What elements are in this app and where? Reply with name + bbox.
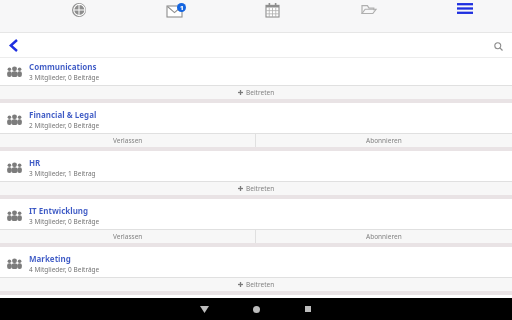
staticText: 4 Mitglieder, 0 Beiträge [29,265,100,274]
button[interactable]: Back [178,298,230,320]
button[interactable]: Menu [448,0,482,33]
button[interactable]: Home [230,298,282,320]
button[interactable]: HR [0,154,512,181]
button[interactable]: Beitreten [0,278,512,291]
button[interactable]: Abonnieren [256,134,512,147]
button[interactable]: Financial & Legal [0,106,512,133]
staticText: Financial & Legal [29,109,97,120]
button[interactable]: Abonnieren [256,230,512,243]
staticText: Marketing [29,253,71,264]
button[interactable]: Verlassen [0,230,255,243]
staticText: Verlassen [113,136,143,145]
button[interactable]: Search [487,35,509,57]
button[interactable]: Globe [62,0,96,33]
button[interactable]: Beitreten [0,182,512,195]
staticText: Abonnieren [366,136,402,145]
button[interactable]: Recents [282,298,334,320]
staticText: 3 Mitglieder, 1 Beitrag [29,169,96,178]
button[interactable]: Back [0,33,26,58]
staticText: Verlassen [113,232,143,241]
staticText: IT Entwicklung [29,205,89,216]
staticText: 1 [180,4,184,12]
staticText: 3 Mitglieder, 0 Beiträge [29,73,100,82]
staticText: 2 Mitglieder, 0 Beiträge [29,121,100,130]
button[interactable]: Files [352,0,386,33]
staticText: Communications [29,61,97,72]
staticText: HR [29,157,41,168]
button[interactable]: IT Entwicklung [0,202,512,229]
staticText: Abonnieren [366,232,402,241]
button[interactable]: Mail [159,0,193,33]
staticText: Beitreten [246,184,275,193]
staticText: Beitreten [246,280,275,289]
staticText: 3 Mitglieder, 0 Beiträge [29,217,100,226]
button[interactable]: Communications [0,58,512,85]
staticText: Beitreten [246,88,275,97]
button[interactable]: Verlassen [0,134,255,147]
button[interactable]: Marketing [0,250,512,277]
button[interactable]: Beitreten [0,86,512,99]
button[interactable]: Calendar [255,0,289,33]
